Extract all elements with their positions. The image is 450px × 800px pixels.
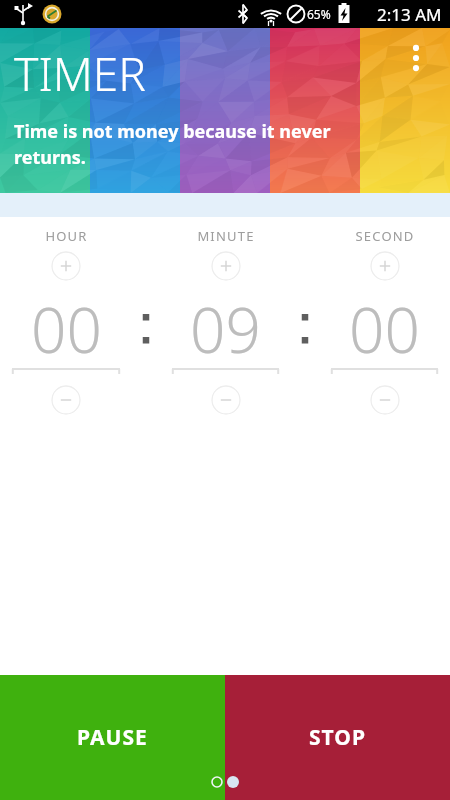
button[interactable]: Increase HOUR — [51, 251, 81, 281]
staticText: 00 — [349, 287, 420, 367]
staticText: 65% — [307, 6, 331, 22]
staticText: 00 — [31, 287, 102, 367]
button[interactable]: Decrease MINUTE — [211, 385, 241, 415]
staticText: HOUR — [45, 227, 88, 245]
button[interactable]: More options — [404, 40, 428, 76]
button[interactable]: PAUSE — [0, 675, 225, 800]
button[interactable]: Decrease HOUR — [51, 385, 81, 415]
button[interactable]: Increase SECOND — [370, 251, 400, 281]
staticText: SECOND — [355, 227, 415, 245]
staticText: PAUSE — [77, 723, 148, 752]
staticText: Time is not money because it never retur… — [14, 119, 331, 170]
button[interactable]: Increase MINUTE — [211, 251, 241, 281]
button[interactable]: 09 — [160, 287, 291, 367]
staticText: MINUTE — [197, 227, 255, 245]
button[interactable]: Decrease SECOND — [370, 385, 400, 415]
button[interactable]: 00 — [319, 287, 450, 367]
staticText: 09 — [190, 287, 261, 367]
staticText: TIMER — [14, 42, 146, 105]
button[interactable]: STOP — [225, 675, 450, 800]
button[interactable]: 00 — [0, 287, 132, 367]
staticText: 2:13 AM — [377, 3, 442, 26]
staticText: STOP — [309, 723, 366, 752]
